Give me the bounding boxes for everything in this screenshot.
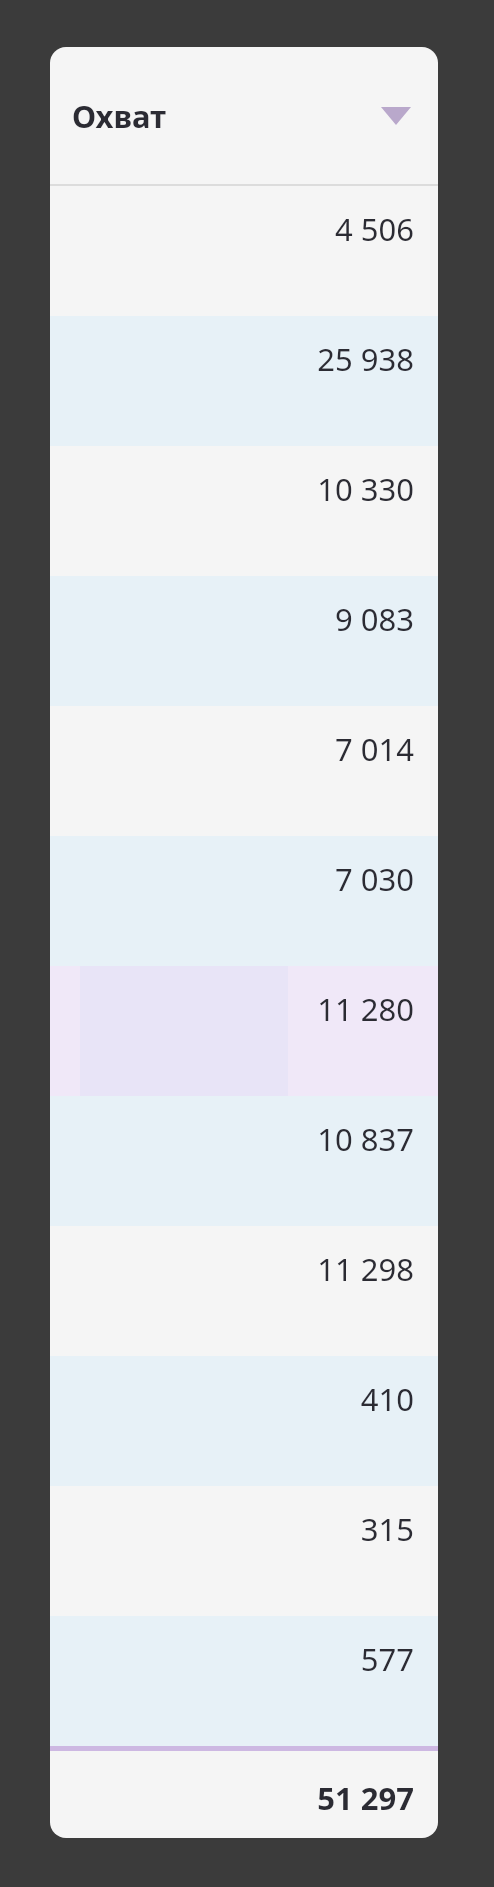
staticText: 7 030: [335, 858, 414, 900]
staticText: 25 938: [317, 338, 414, 380]
staticText: 315: [360, 1508, 414, 1550]
button[interactable]: 51 297: [50, 1751, 438, 1838]
button[interactable]: 11 280: [50, 966, 438, 1096]
staticText: 11 298: [317, 1248, 414, 1290]
button[interactable]: Выбрать метрику: [372, 47, 420, 184]
button[interactable]: Охват: [50, 47, 438, 184]
button[interactable]: 410: [50, 1356, 438, 1486]
button[interactable]: 11 298: [50, 1226, 438, 1356]
staticText: 10 330: [317, 468, 414, 510]
button[interactable]: 7 030: [50, 836, 438, 966]
button[interactable]: 25 938: [50, 316, 438, 446]
staticText: 577: [360, 1638, 414, 1680]
staticText: 7 014: [335, 728, 414, 770]
staticText: 9 083: [335, 598, 414, 640]
button[interactable]: 577: [50, 1616, 438, 1746]
button[interactable]: 10 837: [50, 1096, 438, 1226]
staticText: 410: [360, 1378, 414, 1420]
button[interactable]: 315: [50, 1486, 438, 1616]
button[interactable]: 7 014: [50, 706, 438, 836]
staticText: 4 506: [335, 208, 414, 250]
staticText: 11 280: [317, 988, 414, 1030]
button[interactable]: 9 083: [50, 576, 438, 706]
button[interactable]: 10 330: [50, 446, 438, 576]
staticText: 51 297: [317, 1777, 414, 1819]
staticText: Охват: [72, 95, 166, 137]
button[interactable]: 4 506: [50, 186, 438, 316]
staticText: 10 837: [317, 1118, 414, 1160]
